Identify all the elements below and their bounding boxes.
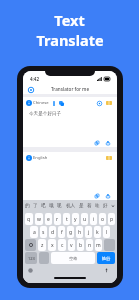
staticText: i	[93, 216, 95, 223]
staticText: g	[69, 229, 73, 236]
staticText: q	[27, 216, 31, 223]
button[interactable]: f	[58, 226, 65, 238]
button[interactable]: v	[68, 239, 75, 251]
staticText: n	[88, 242, 92, 249]
staticText: x	[51, 242, 54, 249]
button[interactable]: e	[45, 213, 52, 225]
staticText: r	[56, 216, 59, 223]
staticText: o	[101, 216, 105, 223]
button[interactable]: Saved phrases	[106, 100, 112, 106]
button[interactable]: j	[85, 226, 92, 238]
staticText: 4:42	[30, 76, 39, 82]
staticText: 123	[28, 256, 35, 261]
staticText: u	[83, 216, 87, 223]
button[interactable]: m	[95, 239, 102, 251]
staticText: h	[78, 229, 82, 236]
button[interactable]: p	[108, 213, 115, 225]
staticText: z	[41, 242, 44, 249]
button[interactable]: Copy	[94, 193, 100, 199]
staticText: c	[61, 242, 64, 249]
staticText: Text	[54, 10, 85, 30]
button[interactable]: r	[54, 213, 61, 225]
button[interactable]: c	[58, 239, 66, 251]
button[interactable]: Saved phrases	[106, 155, 112, 161]
button[interactable]: 哇	[95, 203, 100, 209]
button[interactable]: 着	[87, 203, 92, 209]
button[interactable]: Dictation	[104, 268, 109, 273]
button[interactable]: t	[63, 213, 70, 225]
staticText: d	[51, 229, 55, 236]
staticText: k	[96, 229, 99, 236]
button[interactable]: d	[49, 226, 56, 238]
staticText: e	[47, 216, 50, 223]
button[interactable]: Chinese	[26, 100, 49, 106]
button[interactable]: Share	[105, 193, 111, 199]
button[interactable]: 吧	[41, 203, 46, 209]
button[interactable]: 的	[25, 203, 30, 209]
button[interactable]: Switch languages	[58, 100, 64, 106]
button[interactable]: k	[94, 226, 101, 238]
button[interactable]: u	[81, 213, 88, 225]
button[interactable]: x	[48, 239, 56, 251]
staticText: 空格	[69, 256, 78, 261]
button[interactable]: Emoji	[39, 252, 49, 264]
staticText: s	[42, 229, 45, 236]
button[interactable]: 是	[79, 203, 84, 209]
staticText: w	[37, 216, 41, 223]
button[interactable]: 换行	[97, 252, 115, 264]
button[interactable]: 了	[33, 203, 38, 209]
staticText: v	[70, 242, 73, 249]
staticText: t	[66, 216, 68, 223]
button[interactable]: l	[103, 226, 110, 238]
staticText: j	[88, 229, 90, 236]
button[interactable]: Settings	[26, 85, 35, 94]
button[interactable]: g	[67, 226, 74, 238]
button[interactable]: Copy	[94, 140, 100, 146]
staticText: l	[106, 229, 108, 236]
button[interactable]: Pause	[51, 100, 57, 106]
button[interactable]: Shift	[25, 239, 36, 251]
button[interactable]: 123	[25, 252, 37, 264]
staticText: Translate	[36, 30, 104, 50]
button[interactable]: o	[99, 213, 106, 225]
button[interactable]: 呢	[57, 203, 62, 209]
button[interactable]: Listen	[96, 100, 102, 106]
button[interactable]: i	[90, 213, 97, 225]
button[interactable]: y	[72, 213, 79, 225]
button[interactable]: More suggestions	[111, 204, 115, 208]
staticText: Translator for me	[51, 86, 90, 92]
button[interactable]: a	[30, 226, 38, 238]
button[interactable]: 机人	[66, 203, 76, 209]
button[interactable]: Backspace	[104, 239, 115, 251]
button[interactable]: 哦	[49, 203, 54, 209]
button[interactable]: Share	[105, 140, 111, 146]
staticText: y	[74, 216, 77, 223]
button[interactable]: 空格	[51, 252, 95, 264]
staticText: p	[110, 216, 114, 223]
button[interactable]: h	[76, 226, 83, 238]
button[interactable]: b	[77, 239, 84, 251]
staticText: Chinese	[33, 100, 49, 106]
button[interactable]: 好	[103, 203, 108, 209]
staticText: a	[33, 229, 36, 236]
staticText: b	[79, 242, 83, 249]
staticText: m	[96, 242, 101, 249]
button[interactable]: n	[86, 239, 93, 251]
button[interactable]: Keyboard settings	[28, 268, 33, 273]
button[interactable]: s	[40, 226, 47, 238]
staticText: 换行	[102, 256, 111, 261]
button[interactable]: z	[38, 239, 46, 251]
staticText: f	[61, 229, 63, 236]
button[interactable]: English	[26, 155, 48, 161]
button[interactable]: w	[35, 213, 43, 225]
staticText: English	[33, 155, 48, 161]
staticText: 今天是个好日子	[29, 111, 62, 117]
button[interactable]: q	[25, 213, 33, 225]
